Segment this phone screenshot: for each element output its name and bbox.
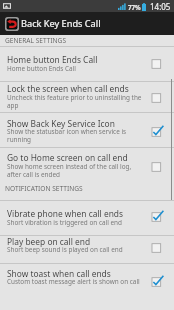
- button[interactable]: Lock the screen when call ends: [0, 82, 174, 113]
- button[interactable]: Show toast when call ends: [0, 264, 174, 310]
- staticText: NOTIFICATION SETTINGS: [5, 184, 83, 193]
- button[interactable]: Play beep on call end: [0, 236, 174, 264]
- staticText: Custom toast message alert is shown on c…: [7, 277, 143, 286]
- staticText: Short vibration is triggered on call end: [7, 218, 143, 227]
- staticText: Go to Home screen on call end: [7, 152, 147, 163]
- staticText: Home button Ends Call: [7, 54, 147, 65]
- staticText: Vibrate phone when call ends: [7, 208, 147, 219]
- staticText: Uncheck this feature prior to uninstalli…: [7, 93, 143, 110]
- staticText: Show Back Key Service Icon: [7, 118, 147, 129]
- button[interactable]: Vibrate phone when call ends: [0, 201, 174, 236]
- staticText: Show home screen instead of the call log…: [7, 162, 143, 179]
- staticText: Show the statusbar icon when service is …: [7, 127, 143, 144]
- staticText: Lock the screen when call ends: [7, 83, 147, 94]
- staticText: Show toast when call ends: [7, 268, 147, 279]
- button[interactable]: Home button Ends Call: [0, 47, 174, 82]
- button[interactable]: Navigate up: [4, 16, 20, 32]
- button[interactable]: Show Back Key Service Icon: [0, 113, 174, 148]
- staticText: Play beep on call end: [7, 236, 147, 247]
- staticText: Back Key Ends Call: [21, 17, 101, 30]
- staticText: Home button Ends Call: [7, 64, 143, 73]
- staticText: GENERAL SETTINGS: [5, 36, 67, 45]
- staticText: 14:05: [150, 1, 171, 12]
- staticText: Short beep sound is played on call end: [7, 245, 143, 254]
- staticText: 77%: [128, 3, 141, 11]
- button[interactable]: Go to Home screen on call end: [0, 148, 174, 182]
